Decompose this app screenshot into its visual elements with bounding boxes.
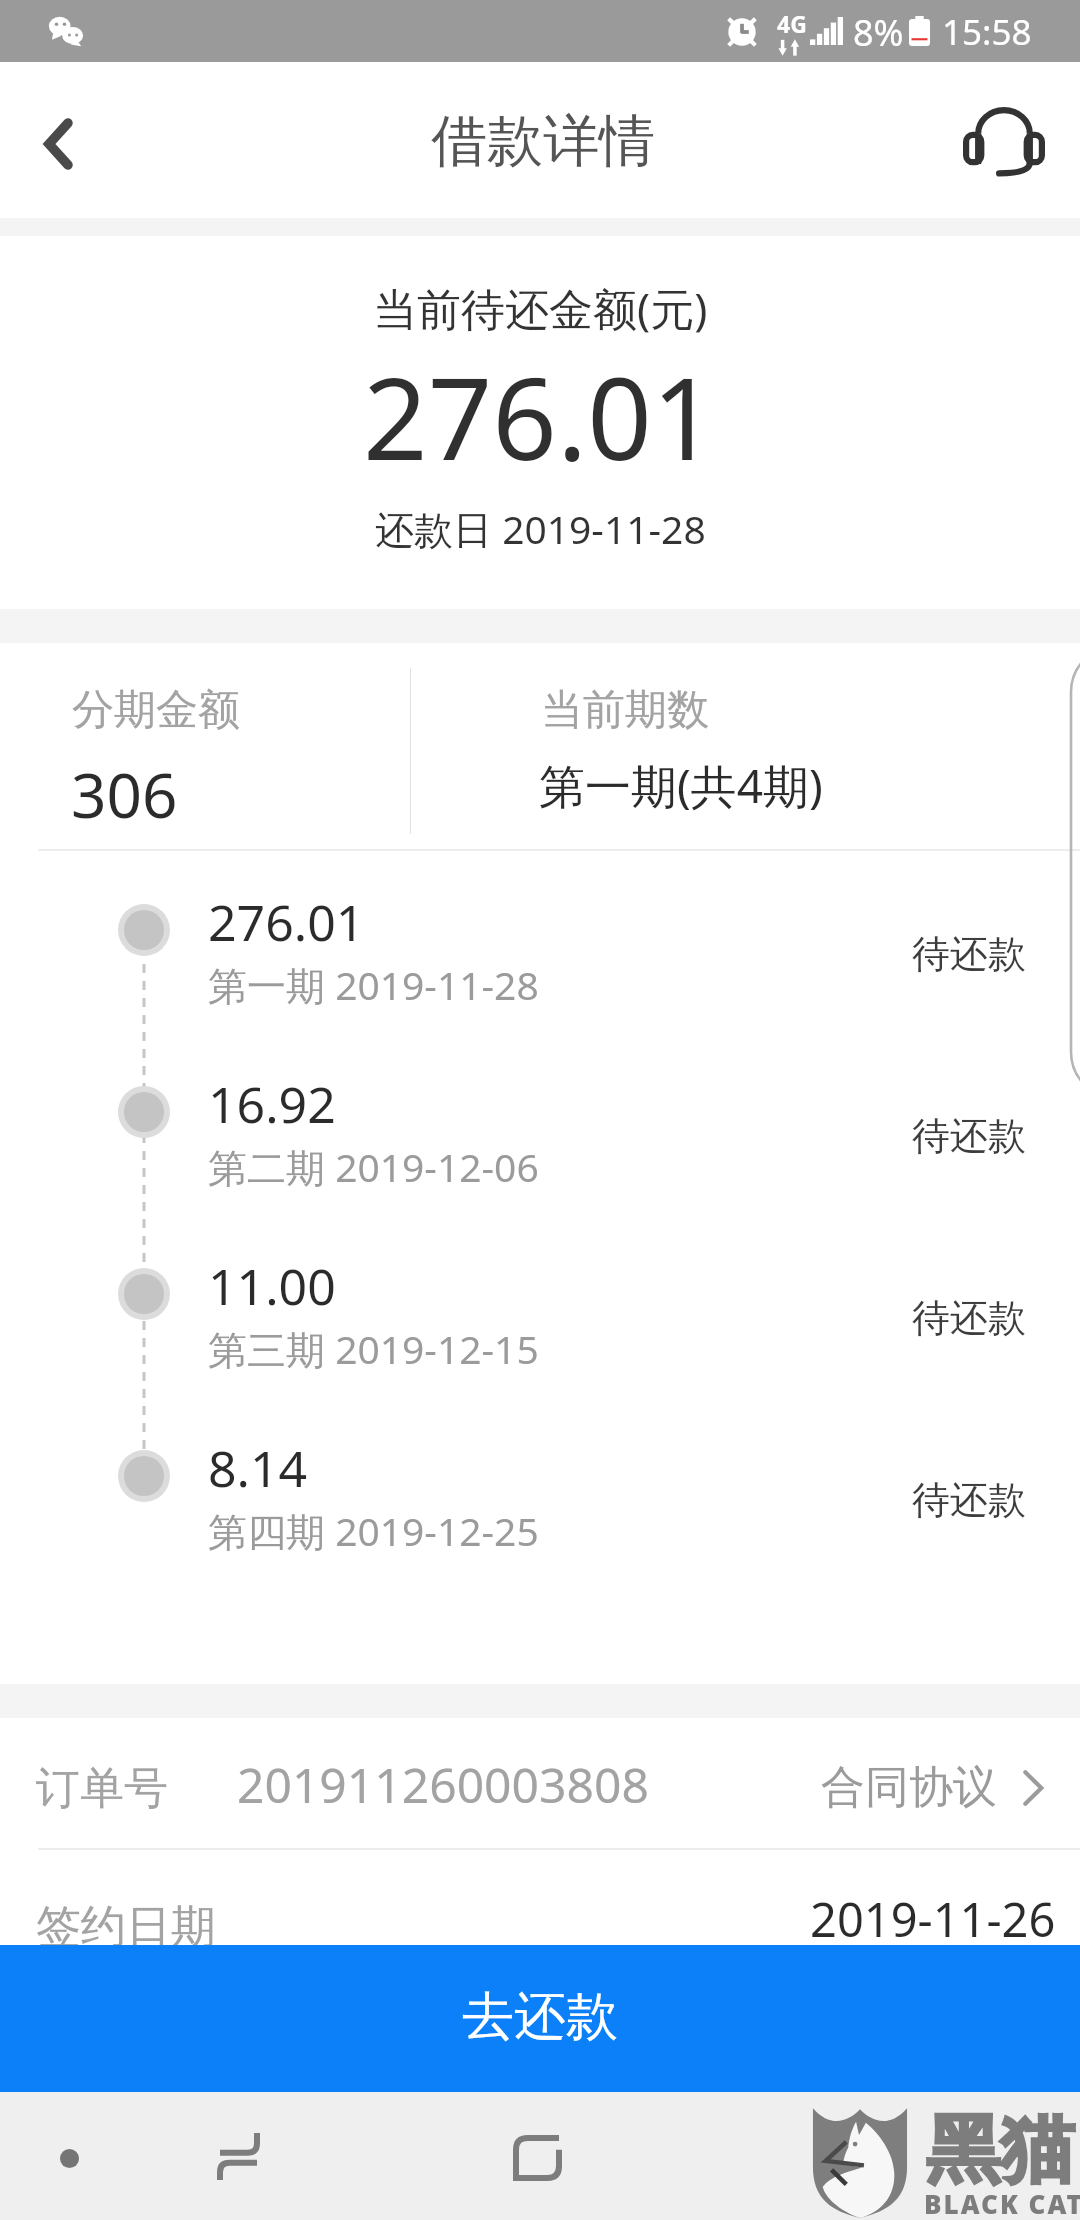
button[interactable]: 11.00 (0, 1215, 1080, 1397)
button[interactable]: 276.01 (0, 851, 1080, 1033)
button[interactable]: Overview (495, 2114, 579, 2198)
staticText: 还款日 2019-11-28 (375, 502, 706, 555)
staticText: 306 (71, 752, 178, 836)
staticText: 借款详情 (431, 106, 655, 177)
staticText: 待还款 (912, 1112, 1026, 1160)
staticText: 签约日期 (36, 1899, 216, 1956)
button[interactable]: Recents (33, 2120, 105, 2192)
staticText: 4G (777, 8, 807, 39)
staticText: 待还款 (912, 1476, 1026, 1524)
staticText: 第四期 2019-12-25 (208, 1504, 539, 1557)
staticText: 15:58 (942, 8, 1032, 56)
button[interactable]: Back (0, 66, 117, 222)
staticText: 2019-11-26 (810, 1887, 1056, 1951)
staticText: 待还款 (912, 1294, 1026, 1342)
button[interactable]: Home (196, 2114, 280, 2198)
staticText: 去还款 (462, 1984, 618, 2050)
staticText: 黑猫 (926, 2104, 1074, 2197)
staticText: 当前期数 (541, 684, 709, 737)
button[interactable]: 订单号 (0, 1718, 1080, 1848)
staticText: 第三期 2019-12-15 (208, 1322, 539, 1375)
staticText: BLACK CAT (924, 2186, 1080, 2220)
staticText: 当前待还金额(元) (373, 278, 708, 338)
staticText: 待还款 (912, 930, 1026, 978)
staticText: 276.01 (363, 339, 717, 493)
staticText: 11.00 (208, 1252, 336, 1320)
staticText: 276.01 (208, 888, 365, 956)
staticText: 8.14 (208, 1434, 308, 1502)
staticText: 第一期 2019-11-28 (208, 958, 539, 1011)
staticText: 第一期(共4期) (539, 754, 823, 817)
button[interactable]: 8.14 (0, 1397, 1080, 1579)
staticText: 8% (853, 8, 904, 57)
staticText: 16.92 (208, 1070, 336, 1138)
button[interactable]: 16.92 (0, 1033, 1080, 1215)
staticText: 第二期 2019-12-06 (208, 1140, 539, 1193)
button[interactable]: Customer service (928, 63, 1080, 219)
staticText: 订单号 (36, 1761, 168, 1816)
button[interactable]: 去还款 (0, 1945, 1080, 2092)
staticText: 201911260003808 (237, 1752, 649, 1817)
staticText: 合同协议 (821, 1760, 997, 1815)
staticText: 分期金额 (72, 684, 240, 737)
